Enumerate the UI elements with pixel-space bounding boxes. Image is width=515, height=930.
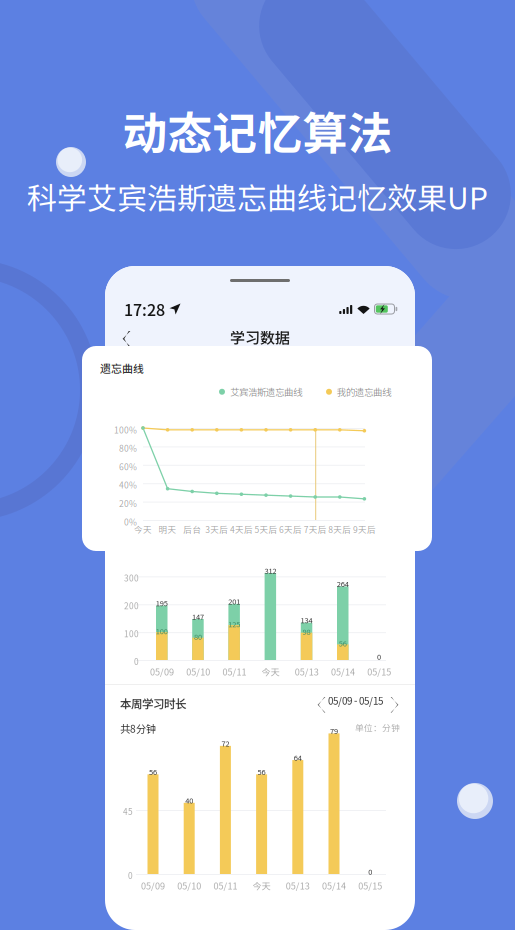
staticText: 今天 — [253, 879, 271, 892]
staticText: 05/09 — [150, 665, 174, 678]
staticText: 79 — [330, 725, 338, 736]
staticText: 05/13 — [286, 879, 310, 892]
staticText: 05/14 — [331, 665, 355, 678]
staticText: 3天后 — [205, 523, 228, 535]
staticText: 20% — [119, 497, 137, 509]
staticText: 100% — [114, 423, 137, 436]
staticText: 学习数据 — [230, 326, 290, 348]
staticText: 05/11 — [222, 665, 246, 678]
staticText: 后台 — [183, 523, 201, 535]
staticText: 6天后 — [279, 523, 302, 535]
staticText: 7天后 — [304, 523, 327, 535]
staticText: 125 — [228, 619, 240, 629]
button[interactable]: Next week — [383, 693, 401, 708]
staticText: 72 — [221, 738, 229, 749]
staticText: 05/13 — [295, 665, 319, 678]
staticText: 动态记忆算法 — [122, 98, 392, 163]
staticText: 本周学习时长 — [120, 695, 186, 712]
staticText: 我的遗忘曲线 — [337, 385, 391, 398]
staticText: 单位：分钟 — [355, 721, 400, 734]
staticText: 0% — [124, 515, 137, 528]
staticText: 17:28 — [124, 297, 165, 321]
staticText: 艾宾浩斯遗忘曲线 — [230, 385, 302, 398]
staticText: 科学艾宾浩斯遗忘曲线记忆效果UP — [27, 175, 488, 218]
staticText: 05/09 — [141, 879, 165, 892]
staticText: 64 — [294, 752, 302, 763]
staticText: 80% — [119, 442, 137, 454]
button[interactable]: Previous week — [310, 693, 328, 708]
button[interactable]: Back — [113, 322, 137, 352]
staticText: 0 — [134, 655, 139, 667]
staticText: 45 — [123, 805, 133, 817]
staticText: 60% — [119, 460, 137, 473]
staticText: 05/14 — [322, 879, 346, 892]
staticText: 56 — [258, 766, 266, 777]
staticText: 100 — [156, 626, 168, 636]
staticText: 100 — [124, 628, 139, 640]
staticText: 4天后 — [230, 523, 253, 535]
staticText: 147 — [192, 611, 204, 622]
staticText: 05/15 — [358, 879, 382, 892]
staticText: 300 — [124, 572, 139, 584]
staticText: 56 — [339, 638, 347, 649]
staticText: 5天后 — [254, 523, 277, 535]
staticText: 05/09 - 05/15 — [328, 693, 383, 708]
staticText: 05/11 — [213, 879, 237, 892]
staticText: 40% — [119, 479, 137, 491]
staticText: 312 — [264, 565, 276, 576]
staticText: 遗忘曲线 — [100, 360, 144, 376]
staticText: 264 — [337, 578, 349, 589]
staticText: 0 — [128, 869, 133, 881]
staticText: 201 — [228, 596, 240, 607]
staticText: 200 — [124, 600, 139, 612]
staticText: 共8分钟 — [120, 721, 156, 736]
staticText: 56 — [149, 766, 157, 777]
staticText: 195 — [156, 598, 168, 608]
staticText: 05/15 — [367, 665, 391, 678]
staticText: 134 — [301, 615, 313, 625]
staticText: 05/10 — [186, 665, 210, 678]
staticText: 80 — [194, 631, 202, 642]
staticText: 今天 — [134, 523, 152, 535]
staticText: 0 — [368, 866, 372, 877]
staticText: 05/10 — [177, 879, 201, 892]
staticText: 98 — [303, 626, 311, 637]
staticText: 明天 — [159, 523, 177, 535]
staticText: 9天后 — [353, 523, 376, 535]
staticText: 今天 — [262, 665, 280, 678]
staticText: 8天后 — [328, 523, 351, 535]
staticText: 0 — [377, 651, 381, 662]
staticText: 40 — [185, 795, 193, 806]
